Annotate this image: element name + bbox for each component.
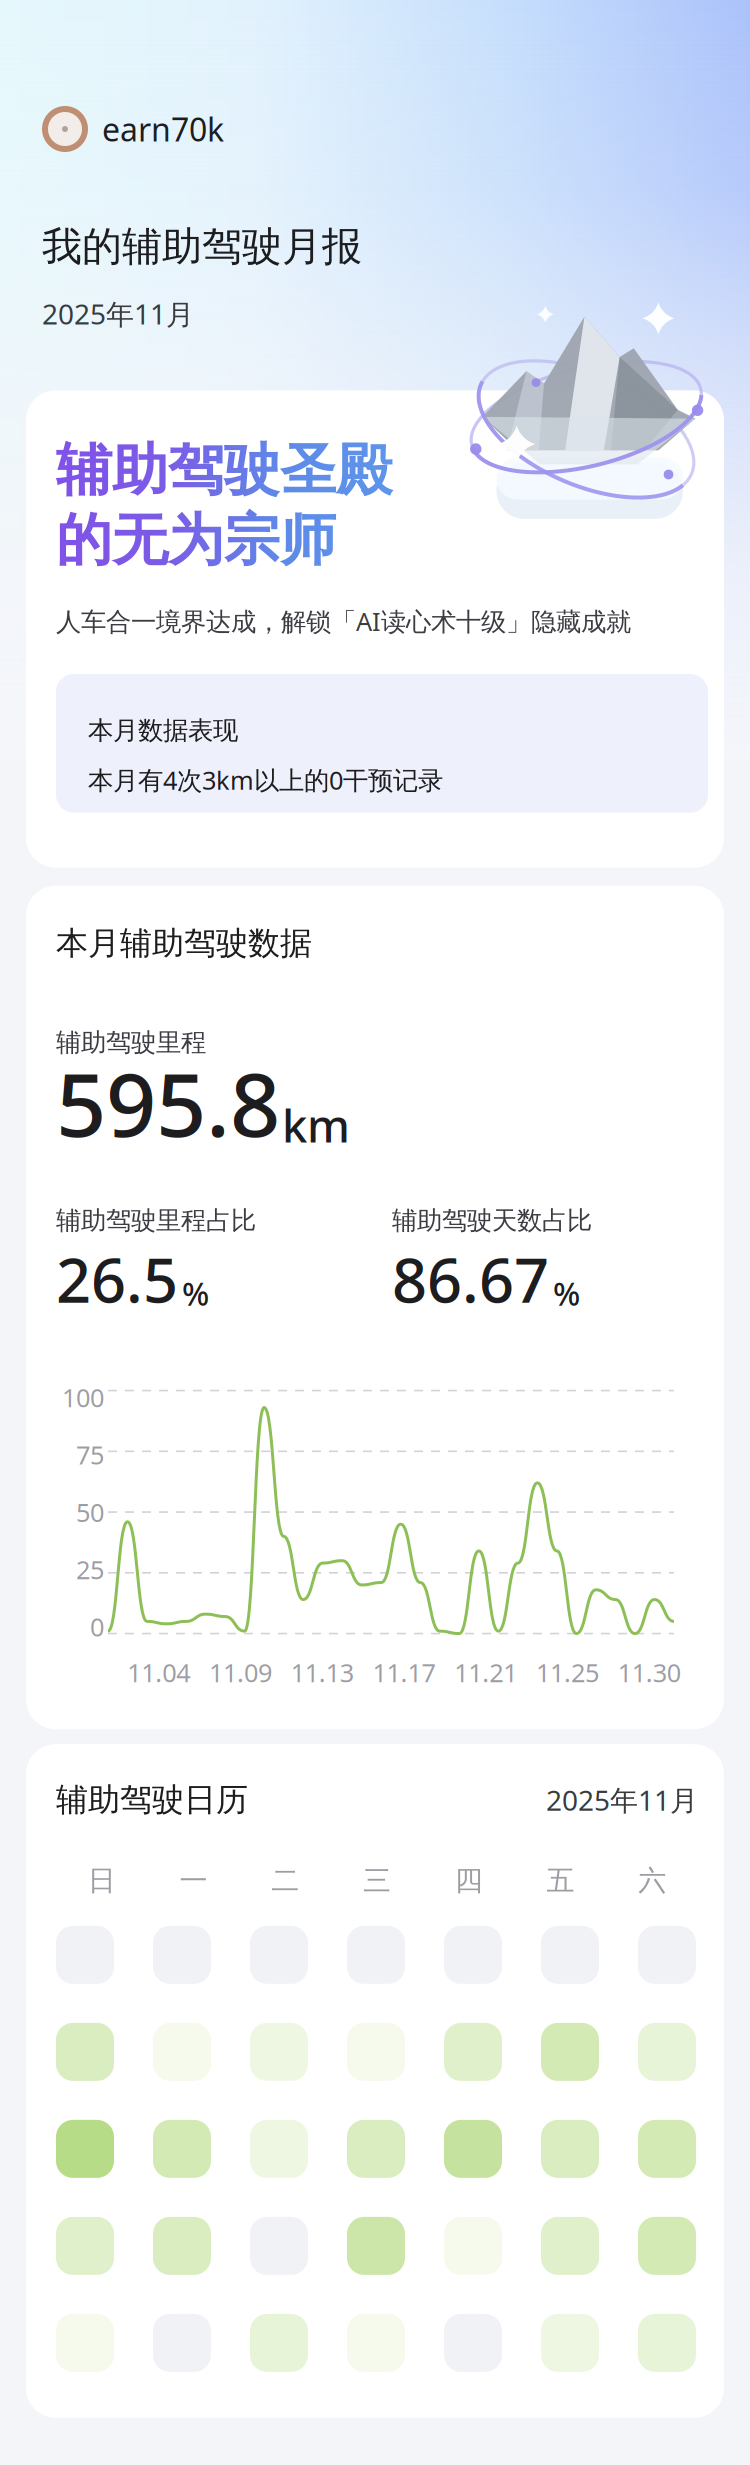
- staticText: 11.21: [454, 1656, 517, 1689]
- staticText: 11.17: [372, 1656, 435, 1689]
- staticText: 595.8: [56, 1044, 280, 1161]
- staticText: 2025年11月: [546, 1781, 698, 1818]
- staticText: 75: [76, 1438, 104, 1471]
- staticText: %: [182, 1272, 209, 1315]
- staticText: 五: [546, 1863, 574, 1898]
- staticText: 0: [90, 1610, 104, 1643]
- staticText: 辅助驾驶日历: [56, 1780, 248, 1819]
- staticText: 50: [76, 1495, 104, 1529]
- staticText: 四: [455, 1863, 483, 1898]
- staticText: 11.25: [536, 1656, 599, 1689]
- staticText: 二: [271, 1863, 299, 1898]
- staticText: 本月辅助驾驶数据: [56, 924, 312, 963]
- staticText: 一: [180, 1863, 208, 1898]
- staticText: 辅助驾驶里程: [56, 1027, 206, 1058]
- staticText: 日: [88, 1863, 116, 1898]
- staticText: earn70k: [102, 108, 224, 150]
- staticText: 11.30: [618, 1656, 681, 1689]
- staticText: 本月数据表现: [88, 715, 238, 746]
- staticText: 辅助驾驶里程占比: [56, 1205, 256, 1236]
- staticText: 我的辅助驾驶月报: [42, 222, 362, 271]
- staticText: 100: [62, 1381, 104, 1414]
- staticText: 11.09: [209, 1656, 272, 1689]
- staticText: 六: [638, 1863, 666, 1898]
- staticText: 11.13: [291, 1656, 354, 1689]
- staticText: 25: [76, 1553, 104, 1586]
- staticText: 2025年11月: [42, 295, 194, 332]
- staticText: 人车合一境界达成，解锁「AI读心术十级」隐藏成就: [56, 604, 631, 638]
- staticText: %: [553, 1272, 580, 1315]
- staticText: 11.04: [127, 1656, 190, 1689]
- staticText: 26.5: [56, 1238, 178, 1319]
- staticText: 辅助驾驶天数占比: [392, 1205, 592, 1236]
- staticText: 86.67: [392, 1238, 549, 1319]
- staticText: km: [282, 1095, 350, 1155]
- staticText: 本月有4次3km以上的0干预记录: [88, 763, 443, 797]
- staticText: 三: [363, 1863, 391, 1898]
